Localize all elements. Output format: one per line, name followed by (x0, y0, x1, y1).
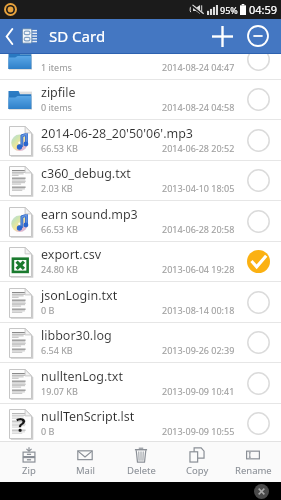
staticText: export.csv (41, 246, 102, 263)
staticText: 95% (220, 4, 238, 16)
staticText: Copy (186, 464, 209, 477)
staticText: jsonLogin.txt (41, 287, 118, 304)
staticText: 2014-06-28_20'50'06'.mp3 (41, 125, 194, 142)
staticText: earn sound.mp3 (41, 206, 138, 223)
staticText: 2013-04-10 18:05 (162, 182, 235, 194)
button[interactable]: Download (0, 54, 281, 80)
button[interactable]: Copy (169, 442, 225, 482)
button[interactable]: zipfile (0, 79, 281, 120)
staticText: SD Card (49, 26, 106, 46)
staticText: 2014-06-28 20:52 (162, 142, 235, 154)
staticText: 2013-08-14 00:18 (162, 304, 235, 316)
button[interactable]: c360_debug.txt (0, 160, 281, 201)
button[interactable]: Remove (240, 19, 275, 53)
staticText: 66.53 KB (41, 142, 78, 154)
staticText: nulltenLog.txt (41, 368, 123, 385)
staticText: 04:59 (249, 2, 278, 17)
staticText: Delete (127, 464, 156, 477)
button[interactable]: 2014-06-28_20'50'06'.mp3 (0, 120, 281, 161)
staticText: 6.54 KB (41, 344, 73, 356)
staticText: 2014-08-24 04:47 (162, 61, 235, 73)
staticText: 2014-06-28 20:58 (162, 223, 235, 235)
staticText: 24.80 KB (41, 263, 78, 275)
staticText: Zip (22, 464, 36, 477)
staticText: 19.07 KB (41, 385, 78, 397)
button[interactable]: Zip (0, 442, 57, 482)
staticText: 0 B (41, 304, 55, 316)
staticText: 0 items (41, 101, 72, 113)
staticText: 2013-09-26 02:39 (162, 344, 235, 356)
staticText: zipfile (41, 84, 76, 101)
button[interactable]: Rename (225, 442, 281, 482)
staticText: 2014-08-24 04:58 (162, 101, 235, 113)
button[interactable]: Close (254, 484, 269, 499)
button[interactable]: Mail (57, 442, 113, 482)
staticText: 66.53 KB (41, 223, 78, 235)
staticText: Mail (76, 464, 95, 477)
staticText: libbor30.log (41, 327, 112, 344)
button[interactable]: libbor30.log (0, 322, 281, 363)
button[interactable]: Back (0, 19, 19, 53)
staticText: 2.03 KB (41, 182, 73, 194)
button[interactable]: ? (0, 403, 281, 441)
staticText: nullTenScript.lst (41, 408, 135, 425)
button[interactable]: export.csv (0, 241, 281, 282)
staticText: Rename (235, 464, 272, 477)
button[interactable]: Delete (113, 442, 169, 482)
staticText: 0 B (41, 425, 55, 437)
staticText: 2013-06-04 19:28 (162, 263, 235, 275)
button[interactable]: jsonLogin.txt (0, 282, 281, 323)
button[interactable]: earn sound.mp3 (0, 201, 281, 242)
button[interactable]: Add (205, 19, 240, 53)
button[interactable]: nulltenLog.txt (0, 363, 281, 404)
staticText: c360_debug.txt (41, 165, 131, 182)
staticText: 1 items (41, 61, 72, 73)
staticText: 2013-09-09 10:41 (162, 385, 235, 397)
staticText: ? (16, 411, 26, 438)
staticText: 2013-09-09 10:55 (162, 425, 235, 437)
